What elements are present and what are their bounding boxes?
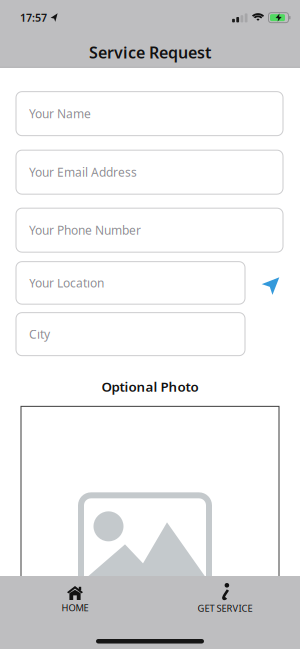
button[interactable]: Your Name — [16, 92, 283, 136]
staticText: 17:57 — [20, 11, 47, 25]
staticText: Your Location — [29, 275, 104, 291]
button[interactable]: Use current location — [258, 270, 284, 296]
staticText: HOME — [61, 601, 88, 614]
button[interactable]: Your Phone Number — [16, 208, 283, 252]
staticText: Your Email Address — [29, 164, 137, 180]
staticText: Service Request — [89, 42, 211, 63]
staticText: GET SERVICE — [197, 602, 252, 614]
staticText: Optional Photo — [101, 378, 198, 395]
button[interactable]: Your Email Address — [16, 150, 283, 194]
button[interactable]: Your Location — [16, 262, 245, 304]
staticText: City — [29, 326, 50, 342]
staticText: Your Name — [29, 106, 91, 122]
staticText: Your Phone Number — [29, 222, 141, 238]
button[interactable]: City — [16, 313, 245, 356]
button[interactable]: HOME — [0, 576, 150, 626]
button[interactable]: Add optional photo — [21, 406, 279, 649]
button[interactable]: GET SERVICE — [150, 576, 300, 626]
